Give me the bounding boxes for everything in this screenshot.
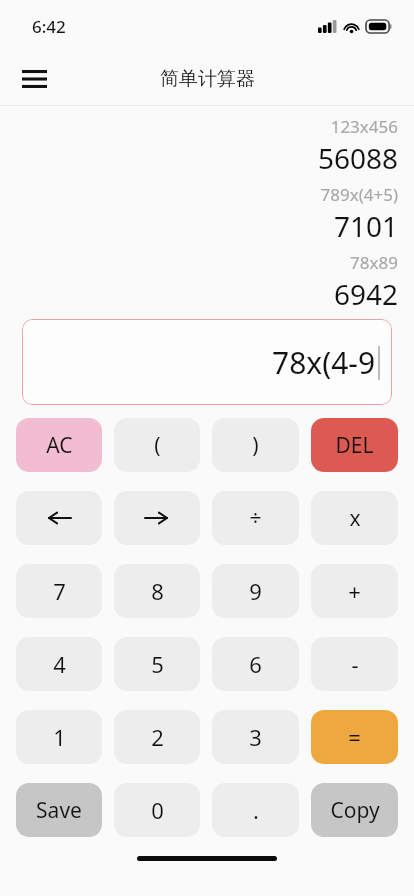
button[interactable]: Move cursor left	[16, 491, 102, 545]
button[interactable]: AC	[16, 418, 102, 472]
button[interactable]: Move cursor right	[114, 491, 200, 545]
staticText: Copy	[330, 796, 380, 825]
staticText: =	[348, 722, 361, 752]
button[interactable]: Menu	[12, 57, 56, 101]
button[interactable]: =	[311, 710, 398, 764]
button[interactable]: Copy	[311, 783, 398, 837]
button[interactable]: Save	[16, 783, 102, 837]
button[interactable]: 5	[114, 637, 200, 691]
staticText: 5	[151, 649, 164, 679]
staticText: 1	[53, 722, 66, 752]
staticText: DEL	[335, 431, 374, 460]
staticText: -	[351, 649, 359, 679]
staticText: 3	[249, 722, 262, 752]
button[interactable]: 0	[114, 783, 200, 837]
staticText: 789x(4+5)	[320, 183, 398, 206]
button[interactable]: 6	[212, 637, 299, 691]
staticText: 123x456	[330, 115, 398, 138]
button[interactable]: ÷	[212, 491, 299, 545]
staticText: ÷	[249, 504, 262, 533]
staticText: (	[154, 431, 161, 460]
staticText: )	[252, 431, 259, 460]
button[interactable]: )	[212, 418, 299, 472]
staticText: 4	[53, 649, 66, 679]
staticText: Save	[36, 796, 82, 825]
button[interactable]: 9	[212, 564, 299, 618]
button[interactable]: +	[311, 564, 398, 618]
staticText: .	[253, 795, 259, 825]
staticText: 9	[249, 576, 262, 606]
button[interactable]: 8	[114, 564, 200, 618]
staticText: 2	[151, 722, 164, 752]
button[interactable]: -	[311, 637, 398, 691]
staticText: AC	[46, 431, 73, 460]
staticText: x	[349, 504, 361, 533]
button[interactable]: .	[212, 783, 299, 837]
button[interactable]: 7	[16, 564, 102, 618]
button[interactable]: 4	[16, 637, 102, 691]
staticText: 8	[151, 576, 164, 606]
staticText: 6942	[333, 275, 398, 313]
button[interactable]: (	[114, 418, 200, 472]
staticText: 56088	[317, 139, 398, 177]
staticText: 6:42	[32, 15, 66, 38]
button[interactable]: DEL	[311, 418, 398, 472]
staticText: +	[348, 576, 361, 606]
staticText: 78x89	[350, 251, 398, 274]
staticText: 0	[151, 795, 164, 825]
staticText: 78x(4-9	[272, 342, 376, 383]
button[interactable]: 2	[114, 710, 200, 764]
staticText: 6	[249, 649, 262, 679]
button[interactable]: 1	[16, 710, 102, 764]
button[interactable]: 3	[212, 710, 299, 764]
button[interactable]: x	[311, 491, 398, 545]
staticText: 简单计算器	[160, 67, 255, 91]
staticText: 7101	[333, 207, 398, 245]
staticText: 7	[53, 576, 66, 606]
button[interactable]: 78x(4-9	[22, 319, 392, 405]
